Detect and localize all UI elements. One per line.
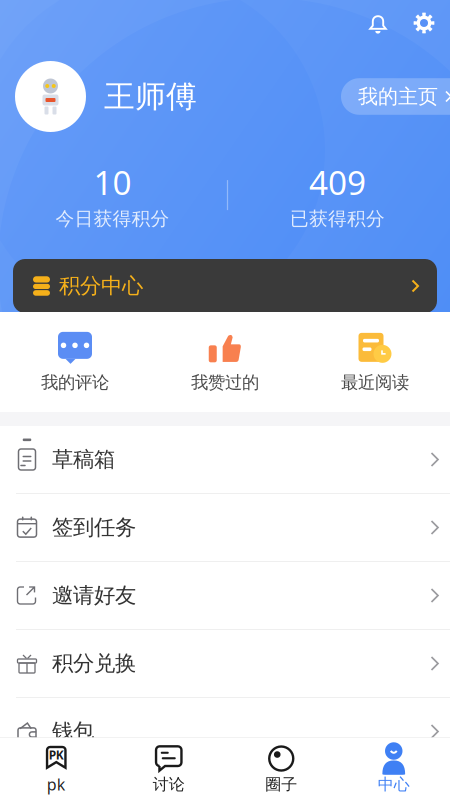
staticText: 409: [309, 160, 366, 204]
staticText: 中心: [378, 774, 410, 794]
button[interactable]: 我的主页: [341, 78, 450, 115]
staticText: 最近阅读: [341, 372, 409, 393]
staticText: 已获得积分: [290, 207, 385, 230]
staticText: 我的主页: [358, 84, 438, 109]
staticText: 积分中心: [59, 273, 143, 299]
button[interactable]: PK: [0, 738, 112, 800]
staticText: 钱包: [52, 718, 94, 745]
button[interactable]: 草稿箱: [0, 426, 450, 494]
staticText: 签到任务: [52, 514, 136, 541]
button[interactable]: 圈子: [225, 738, 337, 800]
staticText: 草稿箱: [52, 446, 115, 473]
staticText: 积分兑换: [52, 650, 136, 677]
staticText: 王师傅: [104, 78, 197, 115]
button[interactable]: 积分兑换: [0, 630, 450, 698]
button[interactable]: Settings: [402, 0, 446, 46]
button[interactable]: 最近阅读: [300, 323, 450, 401]
button[interactable]: 我的评论: [0, 323, 150, 401]
button[interactable]: 中心: [337, 738, 450, 800]
staticText: 讨论: [153, 774, 185, 794]
button[interactable]: 我赞过的: [150, 323, 300, 401]
staticText: 今日获得积分: [55, 207, 169, 230]
button[interactable]: 积分中心: [13, 259, 437, 313]
staticText: 邀请好友: [52, 582, 136, 609]
staticText: 我的评论: [41, 372, 109, 393]
button[interactable]: 钱包: [0, 698, 450, 766]
staticText: pk: [47, 774, 66, 795]
button[interactable]: Notifications: [354, 0, 402, 46]
staticText: 10: [93, 160, 131, 204]
staticText: PK: [49, 747, 64, 763]
staticText: 圈子: [265, 774, 297, 794]
button[interactable]: 邀请好友: [0, 562, 450, 630]
button[interactable]: 签到任务: [0, 494, 450, 562]
staticText: 我赞过的: [191, 372, 259, 393]
button[interactable]: 讨论: [112, 738, 225, 800]
